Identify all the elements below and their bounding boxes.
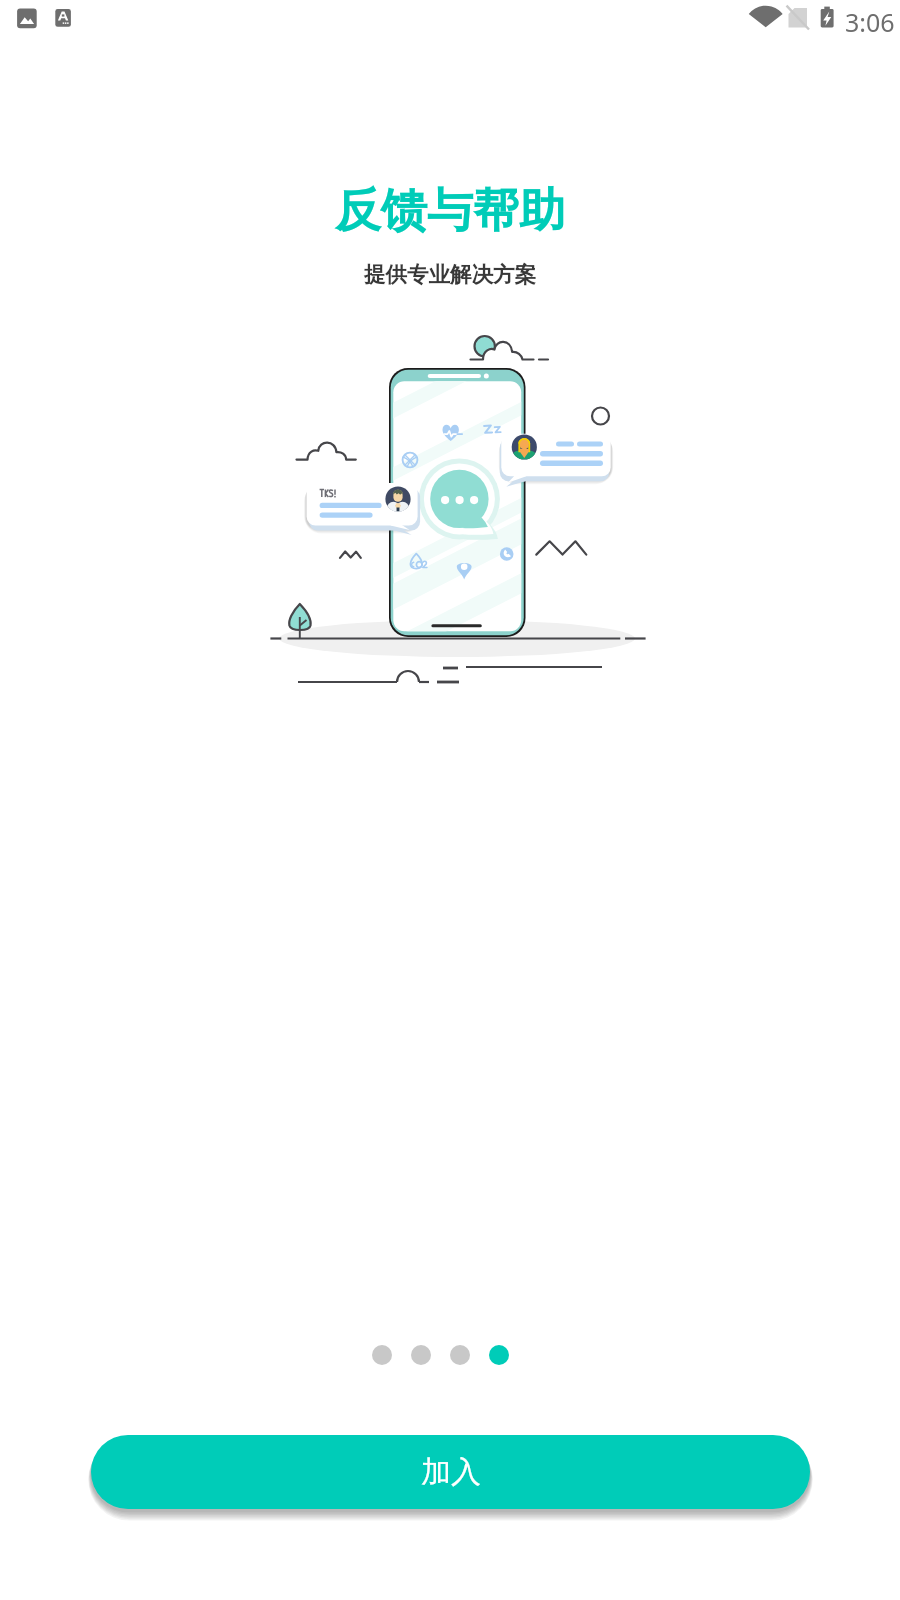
button[interactable]: Page 1: [372, 1345, 392, 1365]
button[interactable]: 加入: [91, 1435, 810, 1509]
staticText: 提供专业解决方案: [364, 261, 536, 288]
button[interactable]: Page 4: [489, 1345, 509, 1365]
staticText: 加入: [421, 1453, 481, 1491]
staticText: 3:06: [845, 5, 895, 39]
staticText: 反馈与帮助: [335, 182, 565, 240]
button[interactable]: Page 3: [450, 1345, 470, 1365]
button[interactable]: Page 2: [411, 1345, 431, 1365]
